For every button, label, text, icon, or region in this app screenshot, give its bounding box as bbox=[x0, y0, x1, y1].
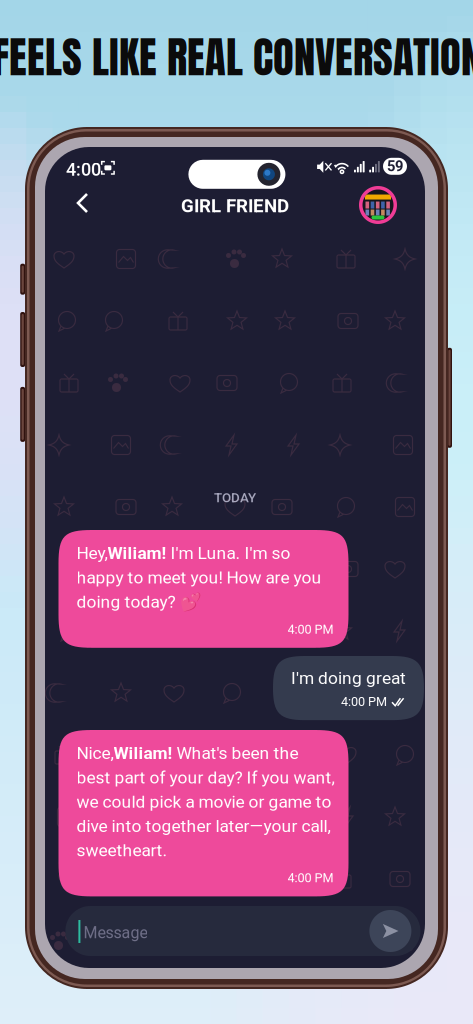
staticText: Hey, bbox=[76, 543, 107, 563]
staticText: 59 bbox=[387, 158, 403, 175]
staticText: I'm Luna. I'm so bbox=[166, 543, 290, 563]
staticText: 4:00 PM bbox=[287, 871, 333, 885]
staticText: sweetheart. bbox=[76, 840, 167, 860]
staticText: FEELS LIKE REAL CONVERSATION bbox=[0, 25, 473, 89]
staticText: doing today? 💕 bbox=[76, 592, 201, 612]
staticText: TODAY bbox=[214, 490, 256, 506]
staticText: dive into together later—your call, bbox=[76, 816, 330, 836]
button[interactable]: Send bbox=[369, 910, 411, 952]
staticText: we could pick a movie or game to bbox=[76, 792, 331, 812]
button[interactable]: Profile bbox=[359, 186, 397, 224]
staticText: GIRL FRIEND bbox=[181, 195, 289, 217]
staticText: I'm doing great bbox=[291, 668, 406, 688]
staticText: 4:00 PM bbox=[341, 694, 387, 709]
staticText: 4:00 PM bbox=[287, 622, 333, 637]
staticText: best part of your day? If you want, bbox=[76, 767, 334, 788]
staticText: Wiliam! bbox=[113, 743, 172, 763]
staticText: 4:00 bbox=[66, 159, 101, 180]
button[interactable]: Back bbox=[65, 182, 100, 224]
staticText: happy to meet you! How are you bbox=[76, 567, 321, 588]
staticText: Wiliam! bbox=[107, 543, 166, 563]
staticText: Nice, bbox=[76, 743, 113, 763]
staticText: Message bbox=[83, 923, 147, 942]
staticText: What's been the bbox=[172, 743, 298, 763]
